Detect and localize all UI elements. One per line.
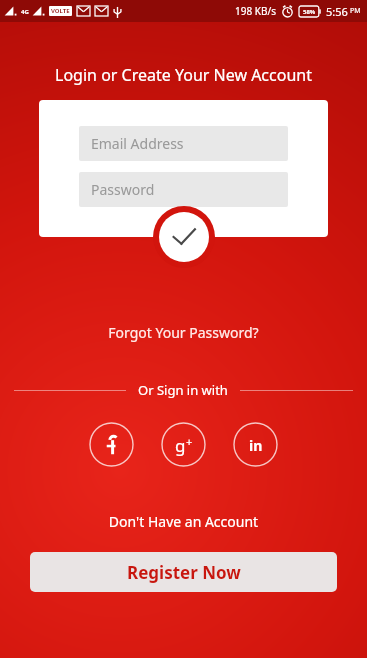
staticText: 58% <box>303 8 316 16</box>
staticText: 5:56 <box>326 4 348 19</box>
button[interactable]: Password <box>79 172 288 207</box>
staticText: 4G <box>21 8 29 16</box>
staticText: Don't Have an Account <box>0 512 367 531</box>
staticText: PM <box>350 6 361 16</box>
button[interactable]: Email Address <box>79 126 288 161</box>
button[interactable]: Google Plus <box>161 422 206 467</box>
staticText: Login or Create Your New Account <box>0 64 367 86</box>
staticText: Forgot Your Password? <box>0 323 367 342</box>
staticText: + <box>186 434 193 449</box>
staticText: Or Sign in with <box>138 381 228 399</box>
staticText: Email Address <box>91 134 184 153</box>
staticText: Register Now <box>127 561 241 584</box>
button[interactable]: LinkedIn <box>233 422 278 467</box>
button[interactable]: Facebook <box>89 422 134 467</box>
staticText: VOLTE <box>51 7 70 15</box>
button[interactable]: Register Now <box>30 552 337 592</box>
staticText: in <box>249 436 263 455</box>
staticText: Password <box>91 180 155 199</box>
staticText: g <box>175 434 186 457</box>
staticText: 198 KB/s <box>235 4 276 18</box>
button[interactable]: Forgot Your Password? <box>0 319 367 346</box>
button[interactable]: Sign in <box>153 206 215 268</box>
